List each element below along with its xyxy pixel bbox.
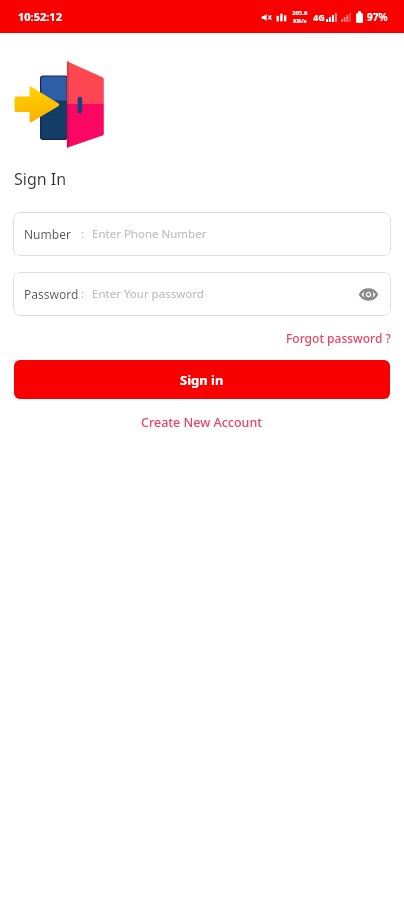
- staticText: :: [81, 286, 85, 302]
- button[interactable]: Create New Account: [133, 411, 271, 434]
- button[interactable]: Password: [13, 272, 391, 316]
- button[interactable]: Show password: [355, 281, 381, 307]
- button[interactable]: Forgot password ?: [286, 327, 404, 349]
- button[interactable]: Number: [13, 212, 391, 256]
- staticText: Password: [24, 286, 79, 302]
- staticText: Sign in: [180, 371, 224, 389]
- staticText: 205.6: [292, 9, 308, 17]
- staticText: Enter Phone Number: [92, 226, 207, 242]
- staticText: :: [81, 226, 85, 242]
- staticText: Number: [24, 226, 71, 242]
- button[interactable]: Sign in: [14, 360, 390, 399]
- staticText: 4G: [313, 11, 325, 23]
- staticText: Enter Your password: [92, 286, 204, 302]
- staticText: Sign In: [14, 168, 67, 190]
- staticText: KB/s: [293, 17, 307, 25]
- staticText: 10:52:12: [18, 9, 62, 24]
- staticText: 97%: [367, 10, 388, 24]
